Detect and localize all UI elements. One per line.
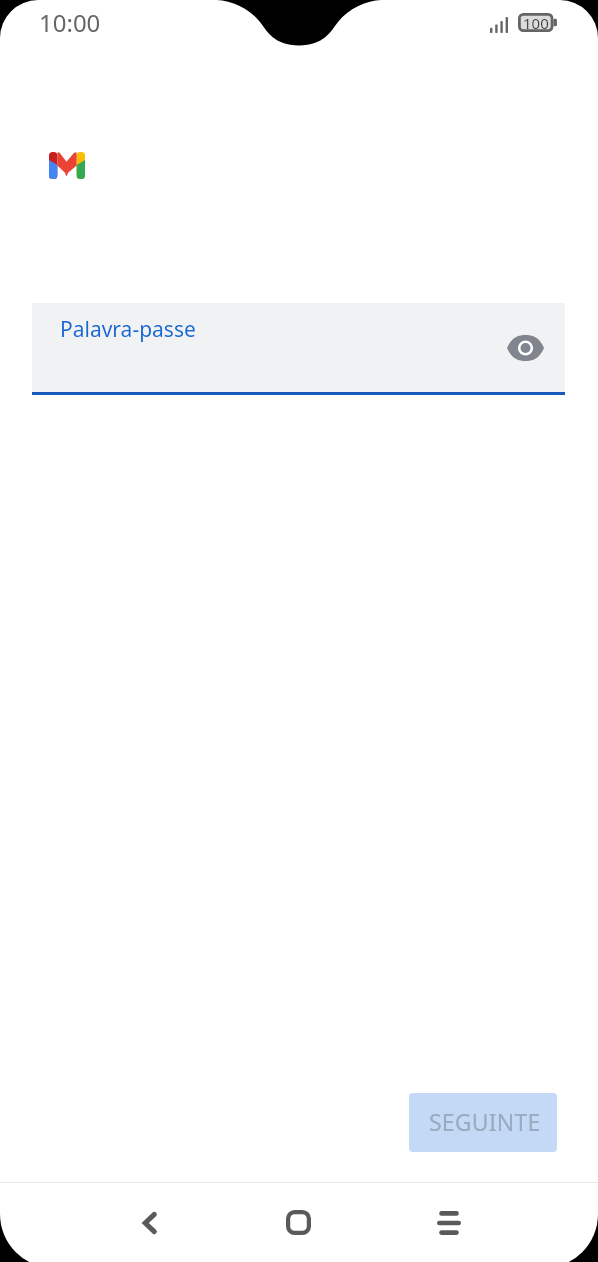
button[interactable]: Back — [110, 1183, 189, 1262]
button[interactable]: Palavra-passe — [32, 303, 565, 395]
button[interactable]: SEGUINTE — [409, 1093, 557, 1152]
staticText: 100 — [523, 13, 549, 32]
button[interactable]: Mostrar palavra-passe — [501, 324, 549, 372]
staticText: SEGUINTE — [429, 1106, 541, 1137]
staticText: Palavra-passe — [60, 315, 196, 344]
button[interactable]: Recent apps — [409, 1183, 488, 1262]
button[interactable]: Home — [259, 1183, 338, 1262]
staticText: 10:00 — [39, 6, 101, 39]
